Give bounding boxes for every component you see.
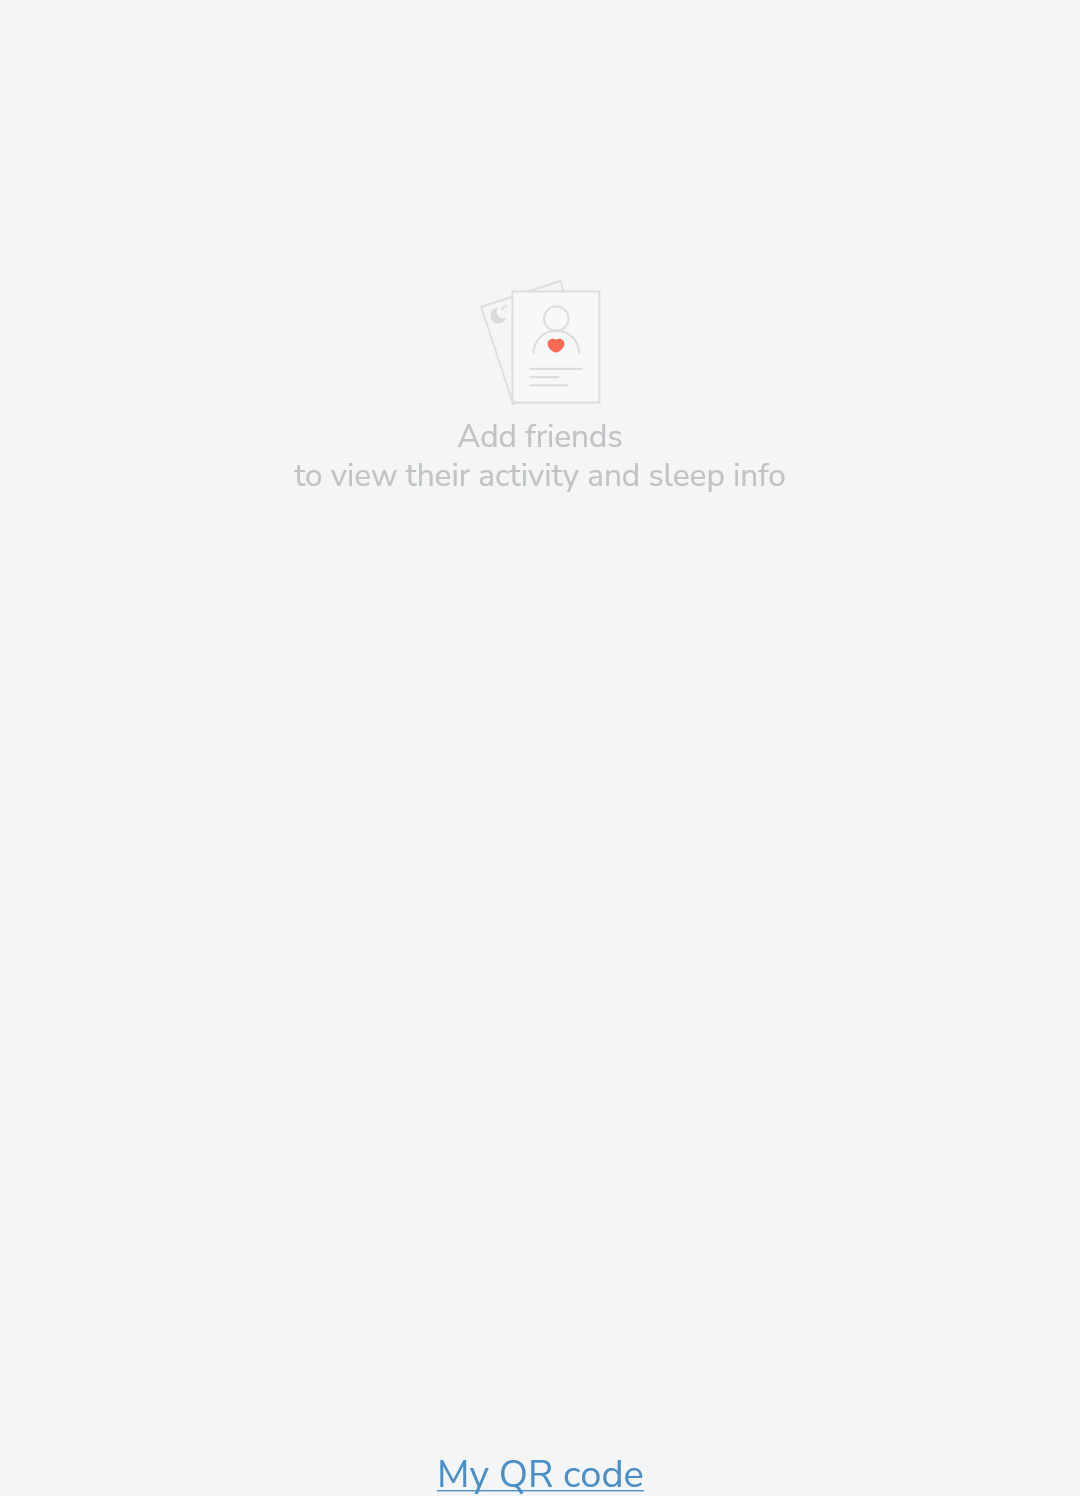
button[interactable]: My QR code [423,1449,658,1496]
staticText: Add friends to view their activity and s… [294,415,786,497]
staticText: My QR code [437,1449,644,1496]
other: Illustration of two friend profile cards [0,0,1080,1496]
